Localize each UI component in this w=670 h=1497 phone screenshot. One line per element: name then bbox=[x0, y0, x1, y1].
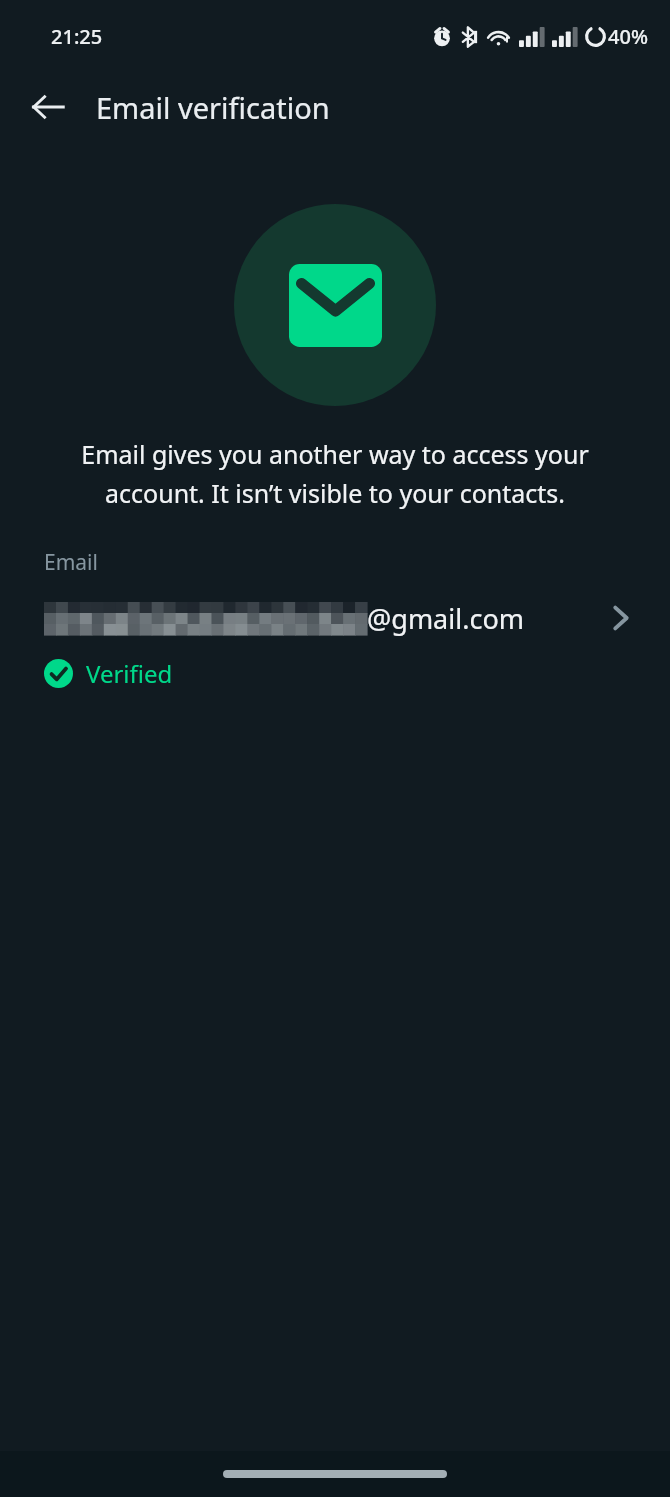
staticText: Email gives you another way to access yo… bbox=[42, 437, 628, 510]
staticText: Email bbox=[44, 548, 98, 577]
staticText: @gmail.com bbox=[367, 600, 524, 637]
staticText: 40% bbox=[608, 23, 648, 50]
button[interactable]: Back bbox=[17, 76, 79, 138]
staticText: Verified bbox=[86, 657, 173, 690]
other: Edit email bbox=[598, 595, 644, 641]
button[interactable]: Email bbox=[0, 548, 670, 690]
staticText: 21:25 bbox=[51, 23, 103, 50]
staticText: Email verification bbox=[96, 88, 330, 127]
